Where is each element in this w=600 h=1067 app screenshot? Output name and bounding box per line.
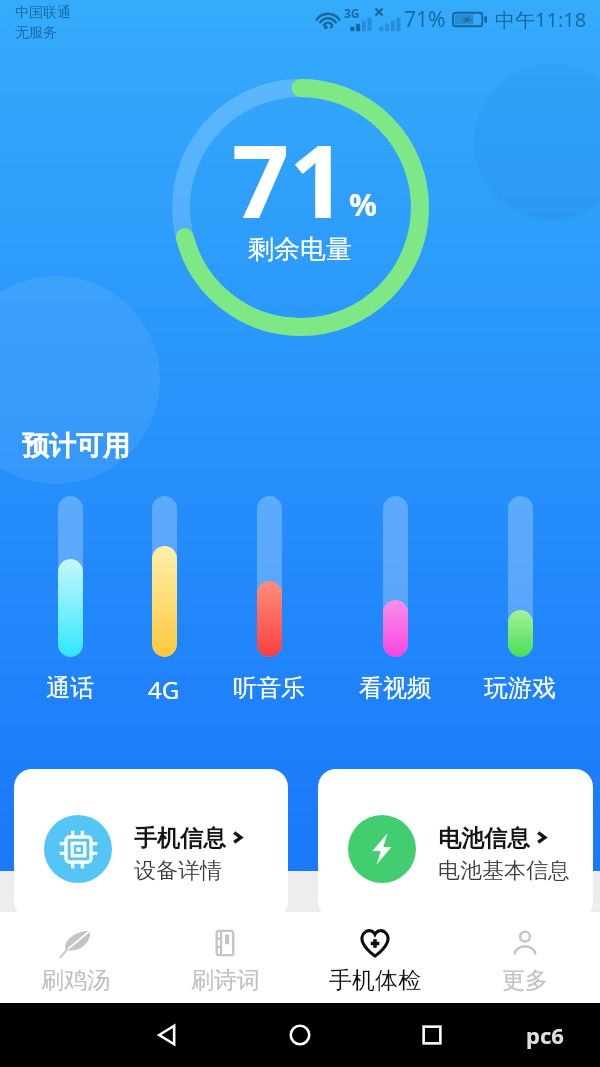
staticText: 手机信息: [134, 824, 226, 853]
staticText: 3G: [344, 5, 360, 21]
staticText: 剩余电量: [248, 233, 352, 266]
staticText: 刷诗词: [191, 966, 260, 995]
button[interactable]: 电池信息: [318, 769, 593, 919]
staticText: 电池基本信息: [438, 857, 570, 885]
button[interactable]: Recents: [410, 1013, 454, 1057]
button[interactable]: Home: [278, 1013, 322, 1057]
staticText: 71%: [404, 5, 446, 34]
staticText: 更多: [502, 966, 548, 995]
staticText: 玩游戏: [484, 673, 556, 703]
staticText: %: [349, 183, 377, 225]
button[interactable]: 刷鸡汤: [0, 912, 150, 1003]
staticText: pc6: [526, 1020, 564, 1050]
staticText: 电池信息: [438, 824, 530, 853]
staticText: 4G: [148, 673, 180, 706]
button[interactable]: 手机信息: [14, 769, 288, 919]
staticText: 刷鸡汤: [41, 966, 110, 995]
staticText: 手机体检: [329, 966, 421, 995]
staticText: 中午11:18: [495, 6, 587, 33]
staticText: 设备详情: [134, 857, 222, 885]
staticText: 通话: [46, 673, 94, 703]
button[interactable]: 手机体检: [300, 912, 450, 1003]
staticText: 71: [232, 111, 347, 247]
button[interactable]: 更多: [450, 912, 600, 1003]
button[interactable]: Back: [146, 1013, 190, 1057]
staticText: 看视频: [359, 673, 431, 703]
staticText: 无服务: [15, 24, 57, 42]
staticText: 听音乐: [233, 673, 305, 703]
staticText: 中国联通: [15, 4, 71, 22]
staticText: 预计可用: [22, 429, 130, 463]
button[interactable]: 刷诗词: [150, 912, 300, 1003]
